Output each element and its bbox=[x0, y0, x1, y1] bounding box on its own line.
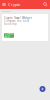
staticText: Crypto Travel Widget bbox=[4, 16, 32, 20]
staticText: book trip bbox=[4, 22, 17, 26]
staticText: CONTINUE bbox=[4, 32, 13, 39]
staticText: Crypto bbox=[8, 2, 20, 7]
staticText: Overview bbox=[2, 11, 9, 12]
staticText: Compare the best bbox=[4, 19, 29, 23]
button[interactable]: CONTINUE bbox=[4, 33, 14, 38]
button[interactable]: Search bbox=[42, 0, 48, 9]
button[interactable]: Menu bbox=[1, 0, 6, 9]
button[interactable]: Add bbox=[39, 86, 45, 92]
